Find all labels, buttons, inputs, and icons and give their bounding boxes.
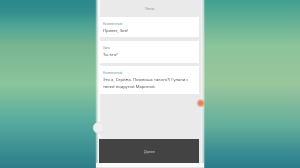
button[interactable]: Далее xyxy=(99,139,199,163)
staticText: Зина xyxy=(103,46,111,50)
staticText: Ты кто? xyxy=(103,52,118,58)
button[interactable]: Неизвестный xyxy=(99,66,199,94)
button[interactable]: Неизвестный xyxy=(99,17,199,37)
button[interactable]: Compose message xyxy=(93,122,104,133)
staticText: Чаты xyxy=(145,6,155,11)
button[interactable]: Чаты xyxy=(97,0,202,16)
staticText: Далее xyxy=(144,149,155,154)
staticText: Неизвестный xyxy=(103,22,123,26)
staticText: Привет, Зин! xyxy=(103,28,129,34)
staticText: Неизвестный xyxy=(103,71,123,75)
staticText: Это я, Серёжа. Помнишь такого?) Гуляли с xyxy=(103,77,189,83)
button[interactable]: Зина xyxy=(99,41,199,63)
staticText: твоей подругой Мариной. xyxy=(103,84,156,90)
